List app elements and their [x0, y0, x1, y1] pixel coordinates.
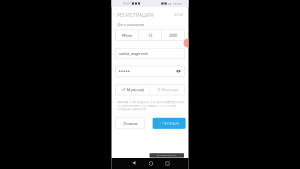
staticText: Нажимая «Регистрация», вы принимаете усл…: [116, 100, 184, 111]
button[interactable]: ♀: [150, 84, 184, 95]
button[interactable]: ♂: [115, 84, 150, 95]
staticText: sasha_angerend: [119, 51, 147, 56]
staticText: Июнь: [122, 32, 132, 38]
staticText: Мужской: [126, 87, 143, 92]
staticText: 13: [148, 32, 152, 38]
staticText: Регистрация: [162, 122, 179, 125]
staticText: vk.com: [123, 2, 131, 5]
button[interactable]: Show password: [176, 70, 181, 73]
staticText: ✓: [159, 122, 161, 125]
staticText: Женский: [161, 87, 177, 92]
button[interactable]: Recents: [164, 160, 170, 166]
button[interactable]: 2000: [161, 30, 184, 40]
button[interactable]: Июнь: [115, 30, 138, 40]
staticText: ♂: [122, 87, 126, 92]
button[interactable]: ✓: [153, 118, 186, 129]
button[interactable]: Back: [131, 160, 137, 166]
button[interactable]: Отмена: [116, 118, 145, 129]
staticText: РЕГИСТРАЦИЯ: [117, 11, 153, 19]
button[interactable]: Home: [148, 160, 154, 166]
staticText: LTE 14:03: [168, 2, 182, 5]
staticText: ВХОД: [175, 13, 183, 17]
staticText: Recorded by XRecorder: [157, 154, 176, 156]
staticText: 2000: [169, 32, 177, 38]
staticText: ♀: [157, 87, 160, 92]
button[interactable]: ВХОД: [175, 12, 183, 17]
staticText: Отмена: [123, 121, 137, 126]
button[interactable]: 13: [139, 30, 161, 40]
staticText: Дата рождения: [117, 22, 144, 27]
